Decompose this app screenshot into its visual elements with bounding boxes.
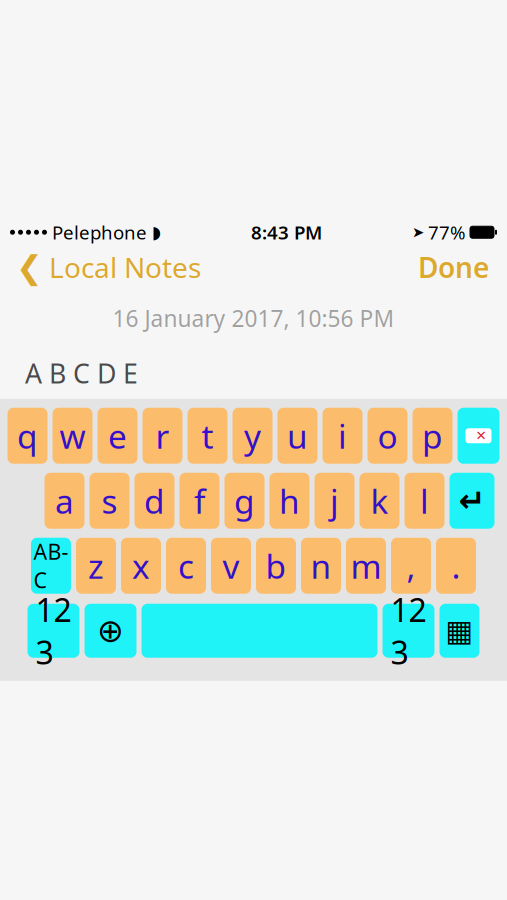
staticText: e [108, 414, 127, 458]
button[interactable]: Done [418, 243, 507, 292]
button[interactable]: b [256, 538, 296, 594]
staticText: 8:43 PM [251, 220, 322, 245]
staticText: k [370, 479, 388, 523]
staticText: i [338, 414, 347, 458]
staticText: ◗ [152, 222, 161, 242]
staticText: x [132, 544, 150, 588]
staticText: Pelephone [52, 220, 147, 245]
button[interactable]: Delete [457, 408, 499, 464]
staticText: p [422, 414, 443, 458]
button[interactable]: a [44, 473, 84, 529]
staticText: w [59, 414, 85, 458]
button[interactable]: t [187, 408, 227, 464]
staticText: 123 [390, 588, 426, 673]
staticText: 77% [428, 220, 466, 245]
button[interactable]: o [367, 408, 407, 464]
staticText: ▦ [445, 614, 473, 647]
staticText: o [377, 414, 397, 458]
staticText: ↵ [458, 483, 485, 519]
button[interactable]: w [52, 408, 92, 464]
button[interactable]: g [224, 473, 264, 529]
staticText: Done [418, 249, 489, 286]
staticText: . [451, 544, 460, 588]
button[interactable]: Return [449, 473, 494, 529]
button[interactable]: x [121, 538, 161, 594]
staticText: b [265, 544, 286, 588]
staticText: a [55, 479, 74, 523]
staticText: ➤ [412, 224, 424, 240]
button[interactable]: r [142, 408, 182, 464]
button[interactable]: ❮ [0, 243, 201, 292]
staticText: n [310, 544, 331, 588]
button[interactable]: . [436, 538, 476, 594]
staticText: l [420, 479, 429, 523]
staticText: ⊕ [97, 613, 124, 649]
button[interactable]: Space [141, 604, 377, 658]
button[interactable]: d [134, 473, 174, 529]
staticText: r [155, 414, 169, 458]
staticText: ABC [33, 537, 68, 594]
button[interactable]: n [301, 538, 341, 594]
button[interactable]: , [391, 538, 431, 594]
staticText: q [17, 414, 38, 458]
staticText: m [350, 544, 381, 588]
button[interactable]: u [277, 408, 317, 464]
button[interactable]: c [166, 538, 206, 594]
button[interactable]: q [7, 408, 47, 464]
button[interactable]: v [211, 538, 251, 594]
button[interactable]: Next keyboard [84, 604, 136, 658]
button[interactable]: e [97, 408, 137, 464]
staticText: f [194, 479, 205, 523]
staticText: ❮ [16, 249, 43, 285]
staticText: z [88, 544, 104, 588]
button[interactable]: Letters [31, 538, 71, 594]
button[interactable]: h [269, 473, 309, 529]
button[interactable]: i [322, 408, 362, 464]
button[interactable]: Hide keyboard [439, 604, 479, 658]
button[interactable]: Numbers [382, 604, 434, 658]
button[interactable]: s [89, 473, 129, 529]
staticText: 123 [35, 588, 71, 673]
staticText: s [101, 479, 117, 523]
staticText: A B C D E [25, 355, 138, 391]
staticText: j [330, 479, 339, 523]
button[interactable]: m [346, 538, 386, 594]
staticText: t [201, 414, 213, 458]
button[interactable]: l [404, 473, 444, 529]
staticText: u [287, 414, 308, 458]
button[interactable]: Numbers [27, 604, 79, 658]
staticText: c [178, 544, 194, 588]
staticText: Local Notes [49, 249, 201, 286]
staticText: v [222, 544, 239, 588]
staticText: ✕ [475, 428, 486, 443]
button[interactable]: z [76, 538, 116, 594]
staticText: d [144, 479, 165, 523]
staticText: 16 January 2017, 10:56 PM [112, 303, 394, 333]
staticText: h [279, 479, 300, 523]
button[interactable]: k [359, 473, 399, 529]
button[interactable]: y [232, 408, 272, 464]
button[interactable]: j [314, 473, 354, 529]
staticText: , [406, 544, 415, 588]
button[interactable]: f [179, 473, 219, 529]
staticText: y [244, 414, 261, 458]
button[interactable]: p [412, 408, 452, 464]
staticText: g [234, 479, 255, 523]
